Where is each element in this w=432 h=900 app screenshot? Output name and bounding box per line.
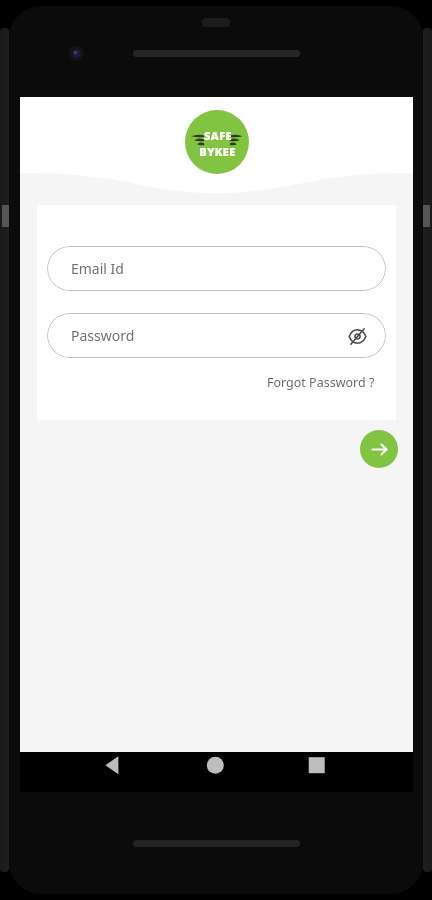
button[interactable]: Email Id (47, 246, 386, 291)
staticText: SAFE (204, 128, 232, 143)
button[interactable]: Safe Bykee logo (185, 110, 249, 174)
staticText: Forgot Password ? (267, 374, 375, 391)
button[interactable]: Submit (360, 430, 398, 468)
button[interactable]: Password (47, 313, 386, 358)
staticText: Email Id (71, 259, 124, 278)
button[interactable]: Toggle password visibility (344, 323, 370, 349)
staticText: BYKEE (199, 144, 236, 159)
button[interactable]: Forgot Password ? (267, 372, 396, 393)
staticText: Password (71, 326, 135, 345)
